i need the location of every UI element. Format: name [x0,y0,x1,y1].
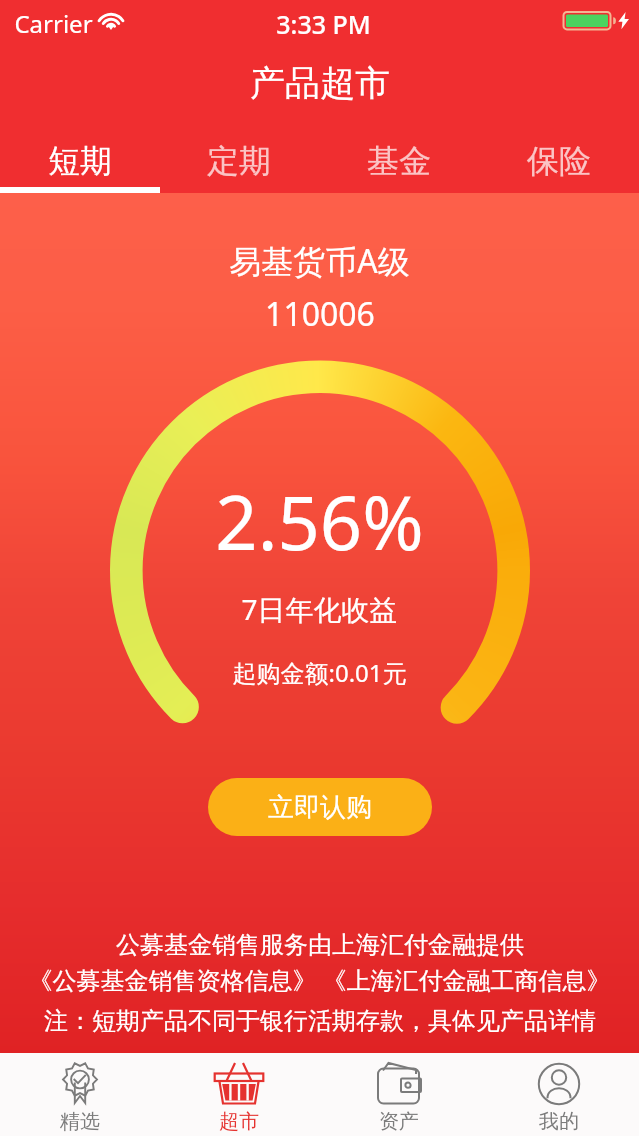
button[interactable]: 精选 [0,1053,159,1136]
staticText: 定期 [207,141,271,181]
other: 资产 [372,1062,426,1106]
staticText: 立即认购 [268,791,372,824]
staticText: 资产 [379,1109,419,1134]
button[interactable]: 定期 [159,128,319,194]
button[interactable]: 资产 [319,1053,479,1136]
staticText: 超市 [219,1109,259,1134]
staticText: Carrier [14,7,93,40]
button[interactable]: 超市 [159,1053,319,1136]
staticText: 精选 [60,1109,100,1134]
staticText: 注：短期产品不同于银行活期存款，具体见产品详情 [44,1006,596,1036]
staticText: 易基货币A级 [229,239,410,283]
other: 超市 [212,1062,266,1106]
staticText: 《公募基金销售资格信息》 《上海汇付金融工商信息》 [28,963,611,996]
staticText: 公募基金销售服务由上海汇付金融提供 [116,930,524,960]
other: 我的 [532,1062,586,1106]
button[interactable]: 保险 [479,128,639,194]
staticText: 2.56% [215,471,424,572]
other: 精选 [53,1062,107,1106]
staticText: 我的 [539,1109,579,1134]
staticText: 起购金额:0.01元 [232,656,407,689]
button[interactable]: 基金 [319,128,479,194]
staticText: 产品超市 [250,61,390,105]
button[interactable]: 立即认购 [208,778,432,836]
staticText: 110006 [265,292,375,336]
button[interactable]: 我的 [479,1053,639,1136]
staticText: 7日年化收益 [241,590,398,628]
staticText: 短期 [48,141,112,181]
button[interactable]: 短期 [0,128,159,194]
staticText: 3:33 PM [276,7,371,41]
staticText: 保险 [527,141,591,181]
staticText: 基金 [367,141,431,181]
